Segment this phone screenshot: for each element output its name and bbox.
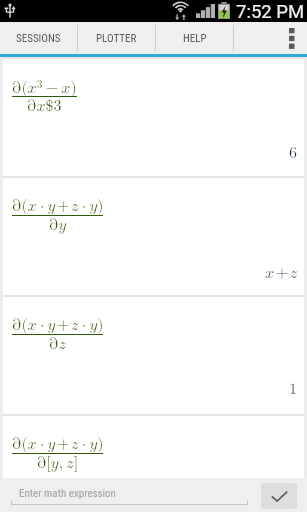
staticText: Enter math expression [19, 487, 116, 500]
button[interactable]: Enter math expression [11, 482, 248, 506]
button[interactable]: ∂(𝑥 ⋅ 𝑦 + 𝑧 ⋅ 𝑦) [3, 178, 304, 295]
button[interactable]: HELP [156, 22, 233, 54]
button[interactable]: SESSIONS [0, 22, 77, 54]
staticText: ∂(𝑥 ⋅ 𝑦 + 𝑧 ⋅ 𝑦) [12, 317, 103, 333]
staticText: 𝑥 + 𝑧 [265, 265, 298, 281]
button[interactable]: PLOTTER [78, 22, 155, 54]
staticText: HELP [183, 32, 207, 45]
staticText: SESSIONS [16, 32, 61, 45]
button[interactable]: ∂(𝑥 ⋅ 𝑦 + 𝑧 ⋅ 𝑦) [3, 416, 304, 512]
staticText: 1 [289, 381, 298, 397]
staticText: ∂[𝑦, 𝑧] [37, 455, 79, 471]
staticText: 7:52 PM [236, 1, 305, 23]
button[interactable]: ∂(𝑥 ⋅ 𝑦 + 𝑧 ⋅ 𝑦) [3, 297, 304, 414]
staticText: 6 [289, 145, 298, 161]
staticText: ∂(𝑥 ⋅ 𝑦 + 𝑧 ⋅ 𝑦) [12, 436, 103, 452]
button[interactable]: More options [276, 22, 307, 54]
staticText: ∂𝑦 [49, 217, 67, 233]
staticText: ∂𝑥$3 [27, 98, 62, 114]
staticText: ∂(𝑥 ⋅ 𝑦 + 𝑧 ⋅ 𝑦) [12, 198, 103, 214]
button[interactable]: Submit expression [261, 483, 297, 509]
staticText: ∂(𝑥3 − 𝑥) [12, 79, 77, 96]
staticText: PLOTTER [96, 32, 137, 45]
staticText: ∂𝑧 [49, 336, 66, 352]
button[interactable]: ∂(𝑥3 − 𝑥) [3, 59, 304, 176]
